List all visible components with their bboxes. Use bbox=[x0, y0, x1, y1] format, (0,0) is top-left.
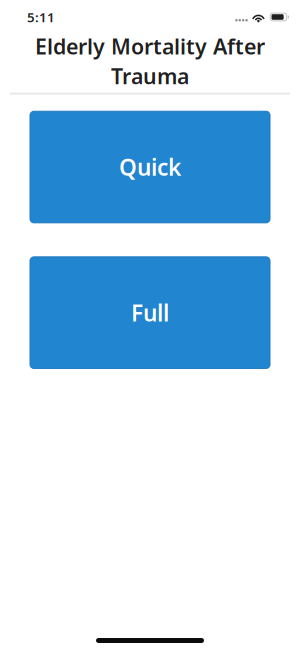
staticText: Full bbox=[131, 298, 169, 328]
staticText: 5:11 bbox=[27, 8, 55, 26]
staticText: Trauma bbox=[111, 62, 189, 90]
button[interactable]: Quick bbox=[30, 111, 270, 223]
staticText: Quick bbox=[119, 152, 181, 182]
staticText: Elderly Mortality After bbox=[35, 32, 265, 60]
button[interactable]: Full bbox=[30, 257, 270, 368]
